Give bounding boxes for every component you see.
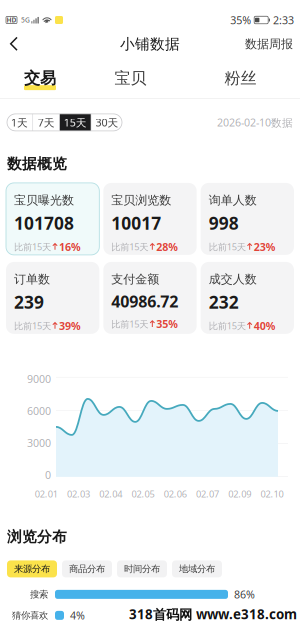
button[interactable]: 15天 — [60, 114, 91, 131]
staticText: 02.04 — [99, 488, 122, 500]
button[interactable]: 粉丝 — [181, 58, 300, 98]
staticText: 数据周报 — [245, 37, 293, 51]
staticText: 宝贝曝光数 — [14, 193, 74, 208]
staticText: 35% — [156, 317, 178, 331]
staticText: 商品分布 — [69, 563, 105, 575]
staticText: 02.06 — [164, 488, 187, 500]
button[interactable]: 1天 — [6, 114, 32, 131]
staticText: 询单人数 — [209, 193, 257, 208]
staticText: 40% — [254, 319, 276, 333]
staticText: 7天 — [38, 115, 55, 129]
staticText: 0 — [45, 468, 51, 482]
staticText: 23% — [254, 240, 276, 254]
staticText: 318首码网 www.e318.com — [129, 605, 297, 623]
staticText: 比前15天 — [111, 240, 148, 253]
staticText: 成交人数 — [209, 272, 257, 287]
staticText: 86% — [234, 587, 255, 601]
button[interactable]: 来源分布 — [7, 560, 57, 577]
staticText: 2:33 — [273, 13, 294, 27]
button[interactable]: 宝贝曝光数 — [6, 183, 99, 255]
staticText: 4% — [70, 608, 85, 622]
staticText: 比前15天 — [111, 318, 148, 330]
staticText: 地域分布 — [179, 563, 215, 575]
staticText: 35% — [230, 13, 251, 27]
staticText: 浏览分布 — [7, 528, 67, 546]
button[interactable]: 7天 — [33, 114, 59, 131]
staticText: 比前15天 — [209, 240, 246, 253]
staticText: 6000 — [27, 404, 51, 418]
staticText: 40986.72 — [111, 291, 178, 312]
staticText: 小铺数据 — [120, 35, 180, 53]
staticText: 粉丝 — [224, 68, 256, 88]
staticText: 宝贝浏览数 — [111, 193, 171, 208]
staticText: 比前15天 — [209, 319, 246, 332]
button[interactable]: 成交人数 — [201, 262, 294, 334]
button[interactable]: 订单数 — [6, 262, 99, 334]
button[interactable]: 数据周报 — [240, 30, 298, 58]
staticText: 来源分布 — [14, 563, 50, 575]
staticText: 02.01 — [35, 488, 58, 500]
button[interactable]: 地域分布 — [172, 560, 222, 577]
staticText: 数据概览 — [7, 155, 67, 173]
button[interactable]: 支付金额 — [103, 262, 197, 334]
staticText: 15天 — [64, 115, 87, 129]
staticText: 30天 — [96, 115, 119, 129]
staticText: 101708 — [14, 212, 74, 235]
staticText: 交易 — [24, 68, 56, 88]
staticText: 02.07 — [196, 488, 219, 500]
staticText: 猜你喜欢 — [12, 610, 48, 621]
staticText: 239 — [14, 291, 44, 314]
button[interactable]: Back — [2, 30, 26, 58]
staticText: 3000 — [27, 436, 51, 450]
button[interactable]: 时间分布 — [117, 560, 167, 577]
staticText: 10017 — [111, 212, 161, 235]
staticText: 宝贝 — [114, 68, 146, 88]
staticText: 订单数 — [14, 272, 50, 287]
staticText: 9000 — [27, 372, 51, 386]
staticText: 02.03 — [67, 488, 90, 500]
staticText: 998 — [209, 212, 239, 235]
staticText: HD — [6, 16, 16, 24]
button[interactable]: 宝贝浏览数 — [103, 183, 197, 255]
staticText: 02.10 — [260, 488, 283, 500]
staticText: 比前15天 — [14, 319, 51, 332]
button[interactable]: 30天 — [92, 114, 123, 131]
staticText: 1天 — [11, 115, 28, 129]
staticText: 2026-02-10数据 — [217, 115, 293, 129]
staticText: 比前15天 — [14, 240, 51, 253]
staticText: 02.09 — [228, 488, 251, 500]
button[interactable]: 询单人数 — [201, 183, 294, 255]
staticText: 5G — [21, 16, 30, 24]
staticText: 时间分布 — [124, 563, 160, 575]
staticText: 16% — [59, 240, 81, 254]
staticText: 28% — [156, 240, 178, 254]
staticText: 39% — [59, 319, 81, 333]
button[interactable]: 宝贝 — [80, 58, 181, 98]
staticText: 232 — [209, 291, 239, 314]
button[interactable]: 交易 — [0, 58, 80, 98]
staticText: 02.05 — [131, 488, 154, 500]
staticText: 搜索 — [30, 589, 48, 600]
button[interactable]: 商品分布 — [62, 560, 112, 577]
staticText: 支付金额 — [111, 272, 159, 287]
